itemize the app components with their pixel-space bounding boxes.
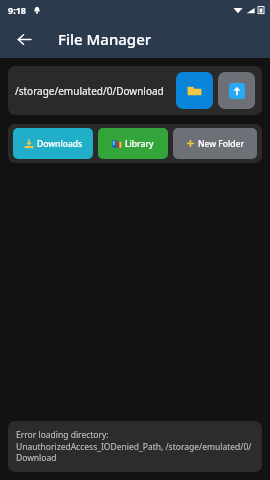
staticText: File Manager [58,29,152,49]
button[interactable]: New Folder [173,128,257,159]
staticText: Downloads [37,138,83,150]
staticText: /storage/emulated/0/Download [15,84,172,98]
button[interactable]: Library [98,128,168,159]
button[interactable]: Go up [218,72,255,109]
staticText: Library [125,138,154,150]
staticText: Error loading directory: UnauthorizedAcc… [16,429,254,464]
staticText: New Folder [198,138,245,150]
button[interactable]: Browse folder [176,72,213,109]
button[interactable]: Downloads [13,128,93,159]
button[interactable]: Back [8,23,40,55]
staticText: 9:18 [8,4,26,16]
